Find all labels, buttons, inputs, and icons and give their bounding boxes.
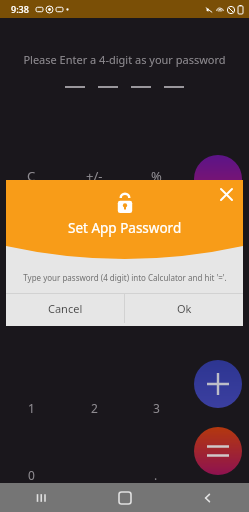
staticText: 2 [91,400,98,416]
button[interactable]: Close [215,183,237,205]
button[interactable]: 3 [125,395,187,421]
staticText: 0 [28,467,35,483]
staticText: Set App Password [68,219,182,237]
button[interactable]: 0 [0,463,63,487]
button[interactable]: Equals [194,427,242,475]
staticText: . [154,467,158,483]
staticText: % [151,167,162,185]
button[interactable]: Home [83,483,166,512]
button[interactable]: 2 [63,395,125,421]
staticText: 1 [28,400,35,416]
button[interactable]: Minus [194,236,242,284]
staticText: Ok [177,301,192,316]
button[interactable]: Multiply [194,155,242,203]
button[interactable]: C [0,163,63,189]
staticText: Type your password (4 digit) into Calcul… [23,272,227,283]
button[interactable]: +/- [63,163,125,189]
staticText: +/- [86,167,103,185]
button[interactable]: 1 [0,395,63,421]
button[interactable]: Cancel [6,294,124,323]
staticText: Please Enter a 4-digit as your password [23,52,226,67]
staticText: 9:38 [11,3,29,15]
button[interactable]: Plus [194,360,242,408]
staticText: Cancel [48,301,83,316]
button[interactable]: . [125,463,187,487]
staticText: 3 [153,400,160,416]
button[interactable]: Back [166,483,249,512]
button[interactable]: Recents [0,483,83,512]
button[interactable]: % [125,163,187,189]
staticText: C [27,167,36,185]
button[interactable]: Ok [125,294,243,323]
